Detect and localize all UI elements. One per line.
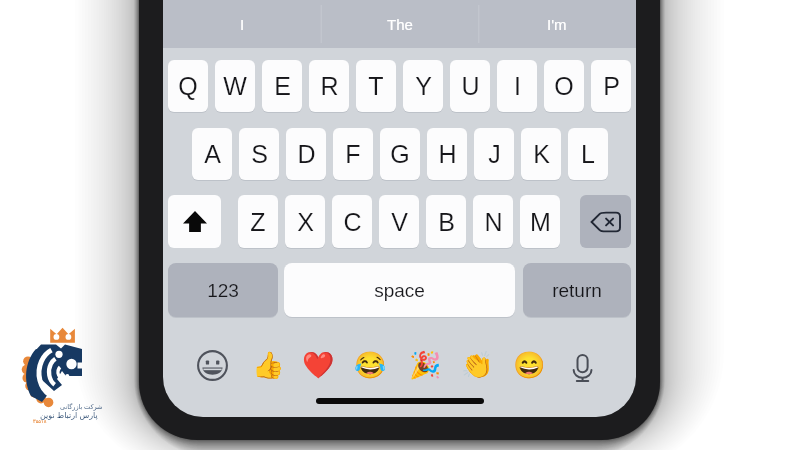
- button[interactable]: B: [426, 195, 466, 248]
- staticText: 🎉: [409, 350, 442, 380]
- staticText: E: [274, 72, 291, 100]
- button[interactable]: O: [544, 60, 584, 112]
- staticText: return: [552, 280, 602, 301]
- staticText: V: [391, 208, 408, 236]
- button[interactable]: D: [286, 128, 326, 180]
- staticText: K: [533, 140, 550, 168]
- button[interactable]: space: [284, 263, 515, 317]
- staticText: شرکت بازرگانی: [60, 402, 103, 411]
- staticText: 123: [207, 280, 239, 301]
- staticText: Y: [415, 72, 432, 100]
- button[interactable]: C: [332, 195, 372, 248]
- staticText: I'm: [547, 16, 567, 33]
- button[interactable]: Q: [168, 60, 208, 112]
- staticText: 😄: [513, 350, 546, 380]
- staticText: G: [390, 140, 410, 168]
- staticText: پارس ارتباط نوین: [40, 409, 98, 420]
- staticText: N: [484, 208, 503, 236]
- staticText: M: [530, 208, 551, 236]
- button[interactable]: W: [215, 60, 255, 112]
- button[interactable]: 123: [168, 263, 278, 317]
- button[interactable]: Z: [238, 195, 278, 248]
- button[interactable]: H: [427, 128, 467, 180]
- staticText: S: [251, 140, 268, 168]
- staticText: I: [514, 72, 521, 100]
- staticText: Q: [178, 72, 198, 100]
- staticText: O: [554, 72, 574, 100]
- button[interactable]: S: [239, 128, 279, 180]
- button[interactable]: R: [309, 60, 349, 112]
- button[interactable]: P: [591, 60, 631, 112]
- staticText: T: [368, 72, 384, 100]
- button[interactable]: return: [523, 263, 631, 317]
- staticText: B: [438, 208, 455, 236]
- staticText: I: [240, 16, 245, 33]
- button[interactable]: J: [474, 128, 514, 180]
- button[interactable]: 👏: [457, 345, 497, 385]
- staticText: 😂: [354, 350, 387, 380]
- button[interactable]: Dictation microphone: [563, 346, 603, 386]
- button[interactable]: K: [521, 128, 561, 180]
- button[interactable]: F: [333, 128, 373, 180]
- staticText: C: [343, 208, 362, 236]
- button[interactable]: T: [356, 60, 396, 112]
- button[interactable]: 🎉: [405, 345, 445, 385]
- button[interactable]: I'm: [478, 0, 636, 48]
- staticText: ۳۵۵۱۸: [33, 418, 47, 424]
- staticText: L: [581, 140, 595, 168]
- staticText: U: [461, 72, 480, 100]
- button[interactable]: I: [163, 0, 321, 48]
- staticText: D: [297, 140, 316, 168]
- staticText: J: [488, 140, 501, 168]
- button[interactable]: L: [568, 128, 608, 180]
- button[interactable]: X: [285, 195, 325, 248]
- button[interactable]: 👍: [248, 345, 288, 385]
- button[interactable]: Y: [403, 60, 443, 112]
- staticText: F: [345, 140, 361, 168]
- staticText: ❤️: [302, 350, 335, 380]
- button[interactable]: Emoji keyboard: [192, 345, 232, 385]
- staticText: R: [320, 72, 339, 100]
- staticText: 👍: [252, 350, 285, 380]
- button[interactable]: 😂: [350, 345, 390, 385]
- button[interactable]: U: [450, 60, 490, 112]
- staticText: Z: [250, 208, 266, 236]
- button[interactable]: A: [192, 128, 232, 180]
- staticText: X: [297, 208, 314, 236]
- staticText: W: [223, 72, 247, 100]
- button[interactable]: I: [497, 60, 537, 112]
- button[interactable]: V: [379, 195, 419, 248]
- button[interactable]: 😄: [509, 345, 549, 385]
- button[interactable]: ❤️: [298, 345, 338, 385]
- button[interactable]: E: [262, 60, 302, 112]
- staticText: The: [387, 16, 413, 33]
- button[interactable]: M: [520, 195, 560, 248]
- staticText: H: [438, 140, 457, 168]
- staticText: space: [374, 280, 425, 301]
- button[interactable]: N: [473, 195, 513, 248]
- button[interactable]: Shift: [168, 195, 221, 248]
- staticText: 👏: [461, 350, 494, 380]
- button[interactable]: G: [380, 128, 420, 180]
- staticText: A: [204, 140, 221, 168]
- staticText: P: [603, 72, 620, 100]
- button[interactable]: Backspace: [580, 195, 631, 248]
- button[interactable]: The: [321, 0, 479, 48]
